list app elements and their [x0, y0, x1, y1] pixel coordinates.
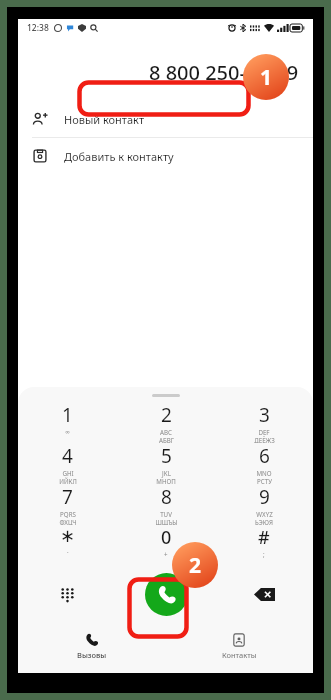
- button[interactable]: Вызовы: [18, 627, 165, 673]
- button[interactable]: 1: [18, 402, 117, 443]
- staticText: Новый контакт: [64, 112, 145, 127]
- staticText: 5: [161, 443, 172, 469]
- staticText: MNO: [256, 469, 272, 477]
- button[interactable]: 4: [18, 443, 117, 484]
- button[interactable]: 3: [215, 402, 313, 443]
- staticText: Контакты: [222, 650, 257, 660]
- button[interactable]: Добавить к контакту: [18, 138, 313, 174]
- button[interactable]: ∗: [18, 525, 117, 561]
- staticText: Вызовы: [77, 650, 107, 660]
- staticText: ∗: [60, 525, 76, 546]
- staticText: .: [67, 546, 69, 554]
- staticText: 0: [161, 525, 172, 550]
- button[interactable]: 8: [117, 484, 215, 525]
- staticText: PQRS: [60, 510, 76, 518]
- staticText: 1: [62, 402, 73, 428]
- staticText: МНОП: [156, 477, 176, 484]
- staticText: 1: [260, 63, 273, 92]
- button[interactable]: 9: [215, 484, 313, 525]
- button[interactable]: Call: [145, 573, 188, 616]
- button[interactable]: 6: [215, 443, 313, 484]
- staticText: ШЩЪЫ: [155, 518, 178, 525]
- staticText: 8 800 250-96-39: [149, 59, 299, 86]
- staticText: #: [258, 525, 270, 550]
- staticText: ;: [263, 550, 265, 558]
- staticText: ∞: [65, 428, 70, 435]
- staticText: ИЙКЛ: [59, 477, 77, 484]
- button[interactable]: 0: [117, 525, 215, 561]
- button[interactable]: #: [215, 525, 313, 561]
- button[interactable]: 2: [117, 402, 215, 443]
- staticText: 12:38: [27, 22, 49, 34]
- staticText: DEF: [258, 428, 270, 436]
- button[interactable]: Контакты: [165, 627, 313, 673]
- button[interactable]: Backspace: [215, 561, 313, 627]
- staticText: АБВГ: [159, 436, 174, 443]
- staticText: GHI: [62, 469, 74, 477]
- staticText: 2: [189, 551, 202, 580]
- button[interactable]: 7: [18, 484, 117, 525]
- staticText: РСТУ: [257, 477, 272, 484]
- staticText: ЬЭЮЯ: [255, 518, 273, 525]
- staticText: 6: [259, 443, 270, 469]
- staticText: ABC: [160, 428, 172, 436]
- staticText: ДЕЁЖЗ: [254, 436, 275, 443]
- staticText: 2: [161, 402, 172, 428]
- button[interactable]: 5: [117, 443, 215, 484]
- staticText: TUV: [160, 510, 172, 518]
- staticText: 9: [259, 484, 270, 510]
- button[interactable]: Новый контакт: [18, 101, 313, 137]
- staticText: 3: [259, 402, 270, 428]
- staticText: +: [164, 550, 168, 558]
- staticText: 8: [161, 484, 172, 510]
- staticText: JKL: [162, 469, 171, 477]
- staticText: ФХЦЧ: [59, 518, 77, 525]
- staticText: WXYZ: [256, 510, 273, 518]
- staticText: 7: [62, 484, 73, 510]
- staticText: Добавить к контакту: [64, 149, 174, 164]
- staticText: 4: [62, 443, 73, 469]
- button[interactable]: Show keypad: [18, 561, 117, 627]
- button[interactable]: 8 800 250-96-39: [18, 55, 313, 89]
